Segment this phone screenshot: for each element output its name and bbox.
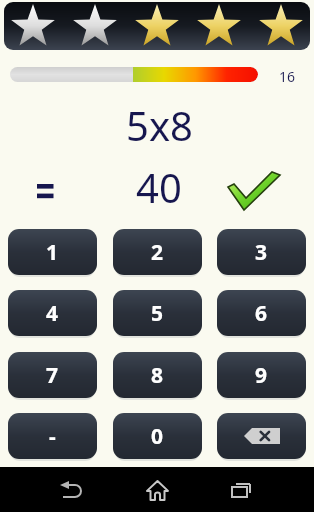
button[interactable]: 7 <box>8 352 97 398</box>
button[interactable]: 9 <box>217 352 306 398</box>
button[interactable]: 8 <box>113 352 202 398</box>
button[interactable]: 6 <box>217 290 306 336</box>
button[interactable] <box>222 473 260 507</box>
staticText: 7 <box>46 361 59 390</box>
staticText: 5x8 <box>126 98 193 152</box>
staticText: 2 <box>151 238 164 267</box>
staticText: 16 <box>279 67 296 86</box>
button[interactable]: 2 <box>113 229 202 275</box>
staticText: 3 <box>255 238 268 267</box>
staticText: - <box>49 422 56 451</box>
staticText: 4 <box>46 299 59 328</box>
button[interactable]: 5 <box>113 290 202 336</box>
staticText: 40 <box>136 160 182 214</box>
button[interactable]: 3 <box>217 229 306 275</box>
staticText: 6 <box>255 299 268 328</box>
button[interactable] <box>52 473 90 507</box>
staticText: 8 <box>151 361 164 390</box>
button[interactable]: 1 <box>8 229 97 275</box>
button[interactable] <box>138 473 176 507</box>
staticText: 5 <box>151 299 164 328</box>
staticText: 9 <box>255 361 268 390</box>
staticText: 1 <box>46 238 59 267</box>
button[interactable] <box>217 413 306 459</box>
staticText: 0 <box>151 422 164 451</box>
button[interactable] <box>4 2 310 50</box>
button[interactable]: 0 <box>113 413 202 459</box>
button[interactable]: 4 <box>8 290 97 336</box>
button[interactable]: - <box>8 413 97 459</box>
